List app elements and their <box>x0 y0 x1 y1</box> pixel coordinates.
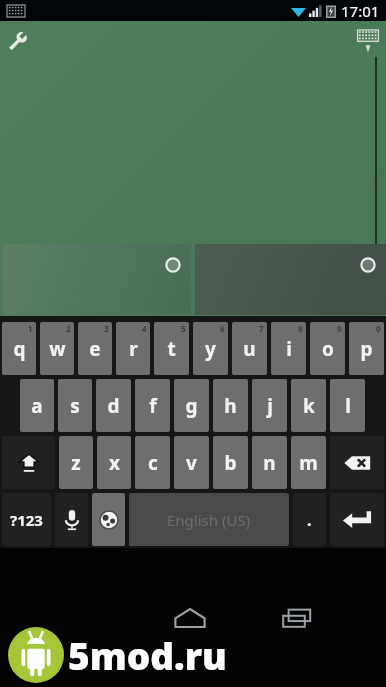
staticText: h <box>224 393 237 419</box>
button[interactable]: d <box>96 379 131 432</box>
button[interactable]: y <box>193 322 228 375</box>
button[interactable]: Enter <box>330 493 384 546</box>
staticText: i <box>286 336 292 362</box>
button[interactable]: Backspace <box>330 436 384 489</box>
button[interactable]: ?123 <box>2 493 51 546</box>
button[interactable]: v <box>174 436 209 489</box>
staticText: 2 <box>66 323 71 334</box>
button[interactable]: . <box>293 493 326 546</box>
button[interactable]: English (US) <box>129 493 289 546</box>
staticText: t <box>167 336 176 362</box>
button[interactable]: Change keyboard <box>355 29 381 53</box>
button[interactable]: k <box>291 379 326 432</box>
staticText: q <box>13 336 26 362</box>
button[interactable]: Shift <box>2 436 55 489</box>
staticText: w <box>49 336 66 362</box>
staticText: f <box>149 393 157 419</box>
button[interactable]: m <box>291 436 326 489</box>
button[interactable]: p <box>349 322 384 375</box>
staticText: . <box>307 509 312 531</box>
button[interactable]: Settings <box>8 31 30 53</box>
staticText: 6 <box>220 323 225 334</box>
staticText: 9 <box>337 323 342 334</box>
staticText: ?123 <box>10 510 43 530</box>
staticText: e <box>89 336 101 362</box>
staticText: r <box>129 336 138 362</box>
staticText: 4 <box>142 323 147 334</box>
staticText: z <box>71 450 81 476</box>
button[interactable]: z <box>59 436 93 489</box>
staticText: b <box>224 450 237 476</box>
staticText: m <box>299 450 318 476</box>
button[interactable]: r <box>116 322 150 375</box>
button[interactable]: i <box>271 322 306 375</box>
button[interactable] <box>3 244 191 315</box>
staticText: y <box>205 336 216 362</box>
button[interactable] <box>195 244 386 315</box>
button[interactable]: n <box>252 436 287 489</box>
button[interactable]: t <box>154 322 189 375</box>
button[interactable]: u <box>232 322 267 375</box>
staticText: English (US) <box>167 510 251 530</box>
staticText: 0 <box>376 323 381 334</box>
button[interactable]: Recent apps <box>274 603 320 633</box>
button[interactable]: b <box>213 436 248 489</box>
staticText: o <box>322 336 334 362</box>
staticText: 17:01 <box>341 1 380 21</box>
staticText: 5 <box>181 323 186 334</box>
staticText: s <box>70 393 80 419</box>
button[interactable]: a <box>20 379 54 432</box>
button[interactable]: o <box>310 322 345 375</box>
staticText: k <box>303 393 315 419</box>
button[interactable]: g <box>174 379 209 432</box>
staticText: c <box>148 450 158 476</box>
staticText: 3 <box>104 323 109 334</box>
staticText: p <box>360 336 373 362</box>
staticText: 5mod.ru <box>68 630 227 680</box>
button[interactable]: s <box>58 379 92 432</box>
staticText: 7 <box>259 323 264 334</box>
button[interactable]: f <box>135 379 170 432</box>
staticText: x <box>109 450 120 476</box>
button[interactable]: x <box>97 436 131 489</box>
staticText: v <box>186 450 197 476</box>
staticText: g <box>185 393 198 419</box>
button[interactable]: Voice input <box>55 493 88 546</box>
button[interactable]: l <box>330 379 365 432</box>
staticText: d <box>107 393 120 419</box>
staticText: a <box>31 393 43 419</box>
button[interactable]: c <box>135 436 170 489</box>
staticText: 1 <box>28 323 33 334</box>
staticText: u <box>243 336 256 362</box>
staticText: l <box>345 393 351 419</box>
button[interactable]: j <box>252 379 287 432</box>
button[interactable]: q <box>2 322 36 375</box>
staticText: j <box>267 393 273 419</box>
button[interactable]: e <box>78 322 112 375</box>
staticText: 8 <box>298 323 303 334</box>
button[interactable]: w <box>40 322 74 375</box>
staticText: n <box>263 450 276 476</box>
button[interactable]: h <box>213 379 248 432</box>
button[interactable]: Home <box>166 603 214 633</box>
button[interactable]: Switch language <box>92 493 125 546</box>
other: Keyboard notification <box>7 5 25 17</box>
